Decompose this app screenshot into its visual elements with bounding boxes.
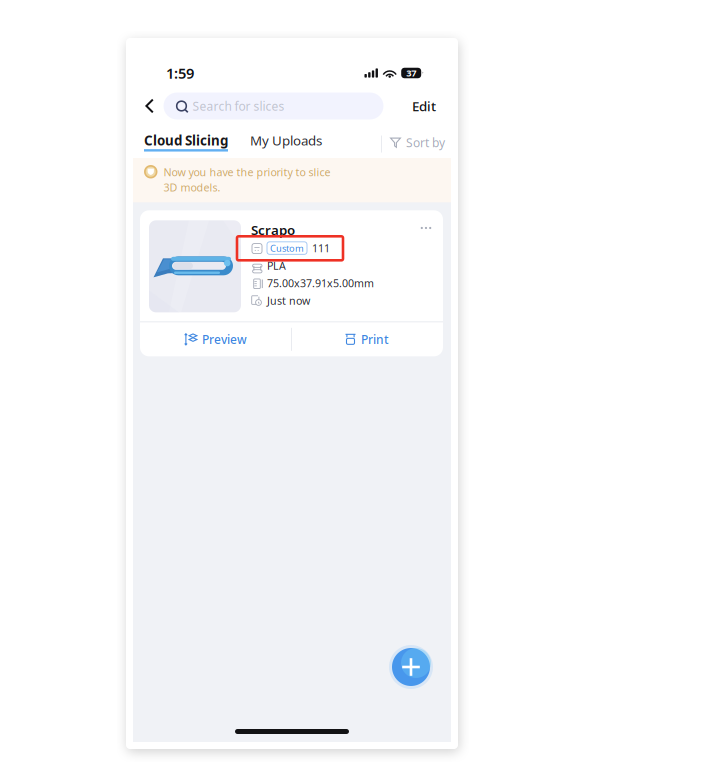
staticText: Cloud Slicing: [144, 131, 228, 149]
staticText: 37: [406, 67, 416, 79]
staticText: Sort by: [406, 135, 445, 150]
staticText: Custom: [270, 242, 304, 254]
staticText: 75.00x37.91x5.00mm: [267, 276, 374, 290]
button[interactable]: Edit: [400, 92, 451, 119]
staticText: Now you have the priority to slice: [163, 165, 330, 179]
button[interactable]: Search for slices: [163, 92, 383, 119]
staticText: Edit: [412, 97, 436, 115]
staticText: My Uploads: [250, 131, 322, 149]
staticText: Preview: [202, 331, 247, 347]
button[interactable]: Sort by: [382, 135, 451, 155]
staticText: Just now: [267, 293, 310, 308]
staticText: PLA: [267, 258, 286, 273]
staticText: Search for slices: [192, 98, 284, 114]
button[interactable]: Cloud Slicing: [133, 131, 238, 155]
button[interactable]: More options: [418, 221, 434, 235]
staticText: Scrapo: [251, 221, 295, 239]
button[interactable]: Back: [133, 93, 163, 119]
button[interactable]: Print: [292, 323, 442, 356]
button[interactable]: Preview: [141, 323, 291, 356]
button[interactable]: My Uploads: [238, 131, 332, 155]
button[interactable]: Add: [389, 645, 433, 689]
staticText: 1:59: [166, 63, 194, 83]
staticText: Print: [361, 331, 389, 347]
staticText: 3D models.: [163, 180, 220, 194]
staticText: 111: [312, 241, 330, 255]
